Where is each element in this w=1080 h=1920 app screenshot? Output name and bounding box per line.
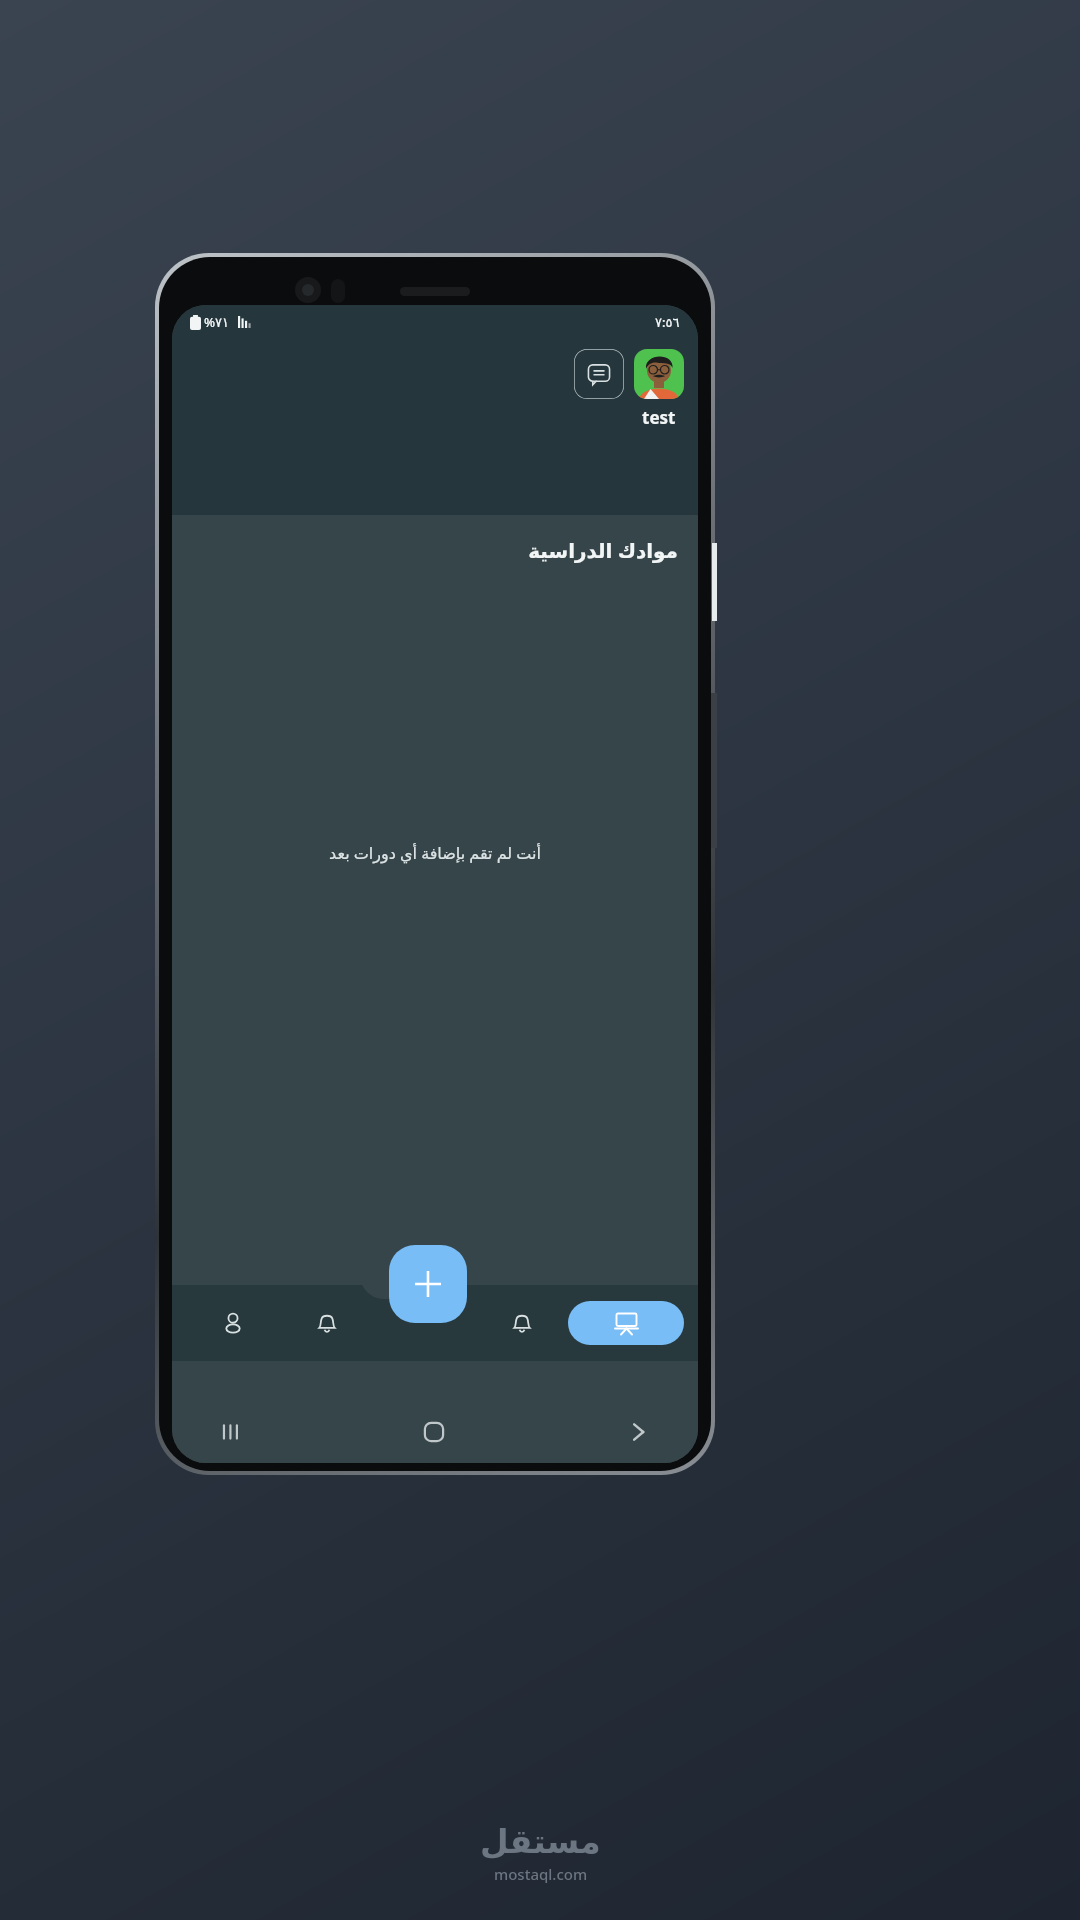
button[interactable]: Add course: [389, 1245, 467, 1323]
button[interactable]: Messages: [574, 349, 624, 399]
button[interactable]: Profile: [186, 1285, 280, 1361]
button[interactable]: Courses: [568, 1301, 684, 1345]
button[interactable]: Profile: [634, 349, 684, 399]
staticText: %٧١: [204, 313, 230, 331]
button[interactable]: Recents: [220, 1421, 242, 1443]
button[interactable]: Alerts: [475, 1285, 568, 1361]
staticText: مستقل: [480, 1822, 601, 1860]
staticText: ٧:٥٦: [655, 313, 680, 331]
staticText: أنت لم تقم بإضافة أي دورات بعد: [329, 842, 541, 864]
staticText: mostaql.com: [494, 1864, 588, 1884]
button[interactable]: Notifications: [280, 1285, 373, 1361]
button[interactable]: Back: [626, 1420, 650, 1444]
staticText: موادك الدراسية: [528, 537, 678, 564]
staticText: test: [642, 406, 676, 429]
button[interactable]: Home: [422, 1420, 446, 1444]
